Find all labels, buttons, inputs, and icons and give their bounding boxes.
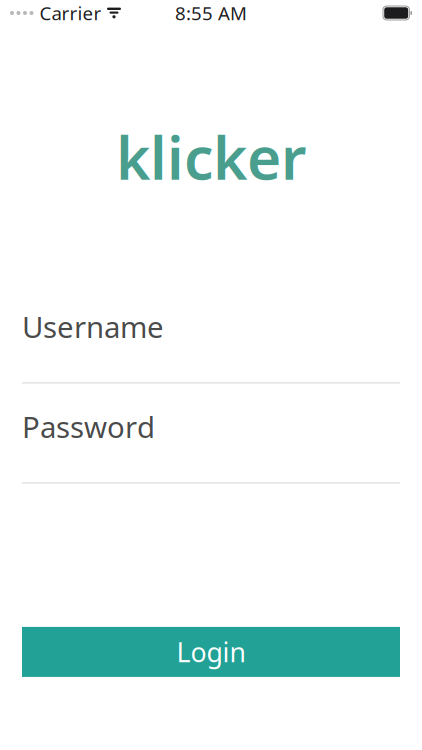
staticText: Login: [176, 634, 245, 670]
staticText: Password: [22, 407, 155, 446]
staticText: Username: [22, 307, 164, 346]
button[interactable]: Login: [22, 627, 400, 677]
button[interactable]: Username: [0, 312, 422, 379]
staticText: Carrier: [39, 1, 101, 25]
staticText: klicker: [116, 118, 306, 196]
button[interactable]: Password: [0, 412, 422, 479]
staticText: 8:55 AM: [175, 1, 247, 25]
